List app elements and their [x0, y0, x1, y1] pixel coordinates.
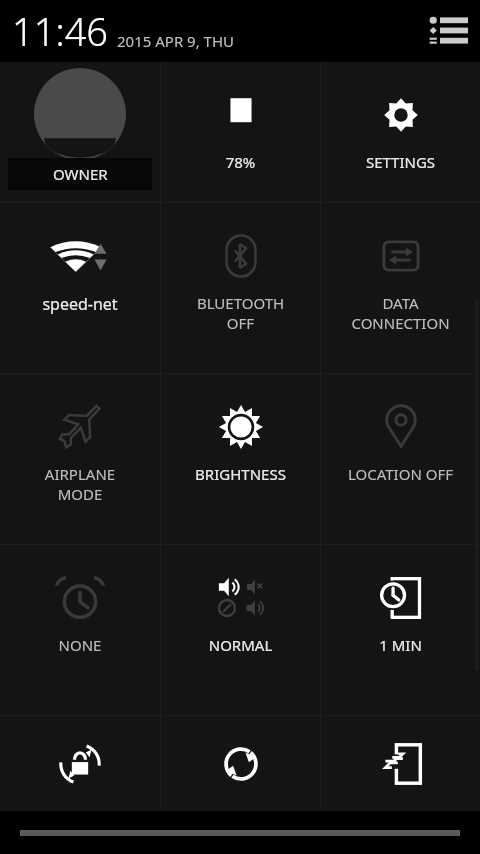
- button[interactable]: BLUETOOTH OFF: [161, 203, 320, 373]
- button[interactable]: AIRPLANE MODE: [0, 374, 160, 544]
- staticText: speed-net: [4, 293, 156, 315]
- button[interactable]: SETTINGS: [321, 62, 480, 202]
- staticText: LOCATION OFF: [325, 464, 476, 484]
- button[interactable]: Quick settings list: [428, 14, 468, 48]
- staticText: 1 MIN: [325, 635, 476, 655]
- button[interactable]: Smart stay: [321, 716, 480, 811]
- staticText: 11:46: [12, 5, 109, 57]
- button[interactable]: 78%: [161, 62, 320, 202]
- staticText: 78%: [165, 152, 316, 172]
- button[interactable]: Rotation lock: [0, 716, 160, 811]
- button[interactable]: NORMAL: [161, 545, 320, 715]
- staticText: SETTINGS: [325, 152, 476, 172]
- button[interactable]: BRIGHTNESS: [161, 374, 320, 544]
- button[interactable]: 1 MIN: [321, 545, 480, 715]
- staticText: DATA CONNECTION: [325, 293, 476, 333]
- staticText: AIRPLANE MODE: [4, 464, 156, 504]
- staticText: OWNER: [53, 164, 108, 184]
- staticText: BRIGHTNESS: [165, 464, 316, 484]
- staticText: 2015 APR 9, THU: [117, 31, 235, 51]
- staticText: NORMAL: [165, 635, 316, 655]
- button[interactable]: OWNER: [0, 62, 160, 202]
- button[interactable]: NONE: [0, 545, 160, 715]
- staticText: NONE: [4, 635, 156, 655]
- staticText: BLUETOOTH OFF: [165, 293, 316, 333]
- button[interactable]: Sync: [161, 716, 320, 811]
- button[interactable]: LOCATION OFF: [321, 374, 480, 544]
- button[interactable]: speed-net: [0, 203, 160, 373]
- button[interactable]: DATA CONNECTION: [321, 203, 480, 373]
